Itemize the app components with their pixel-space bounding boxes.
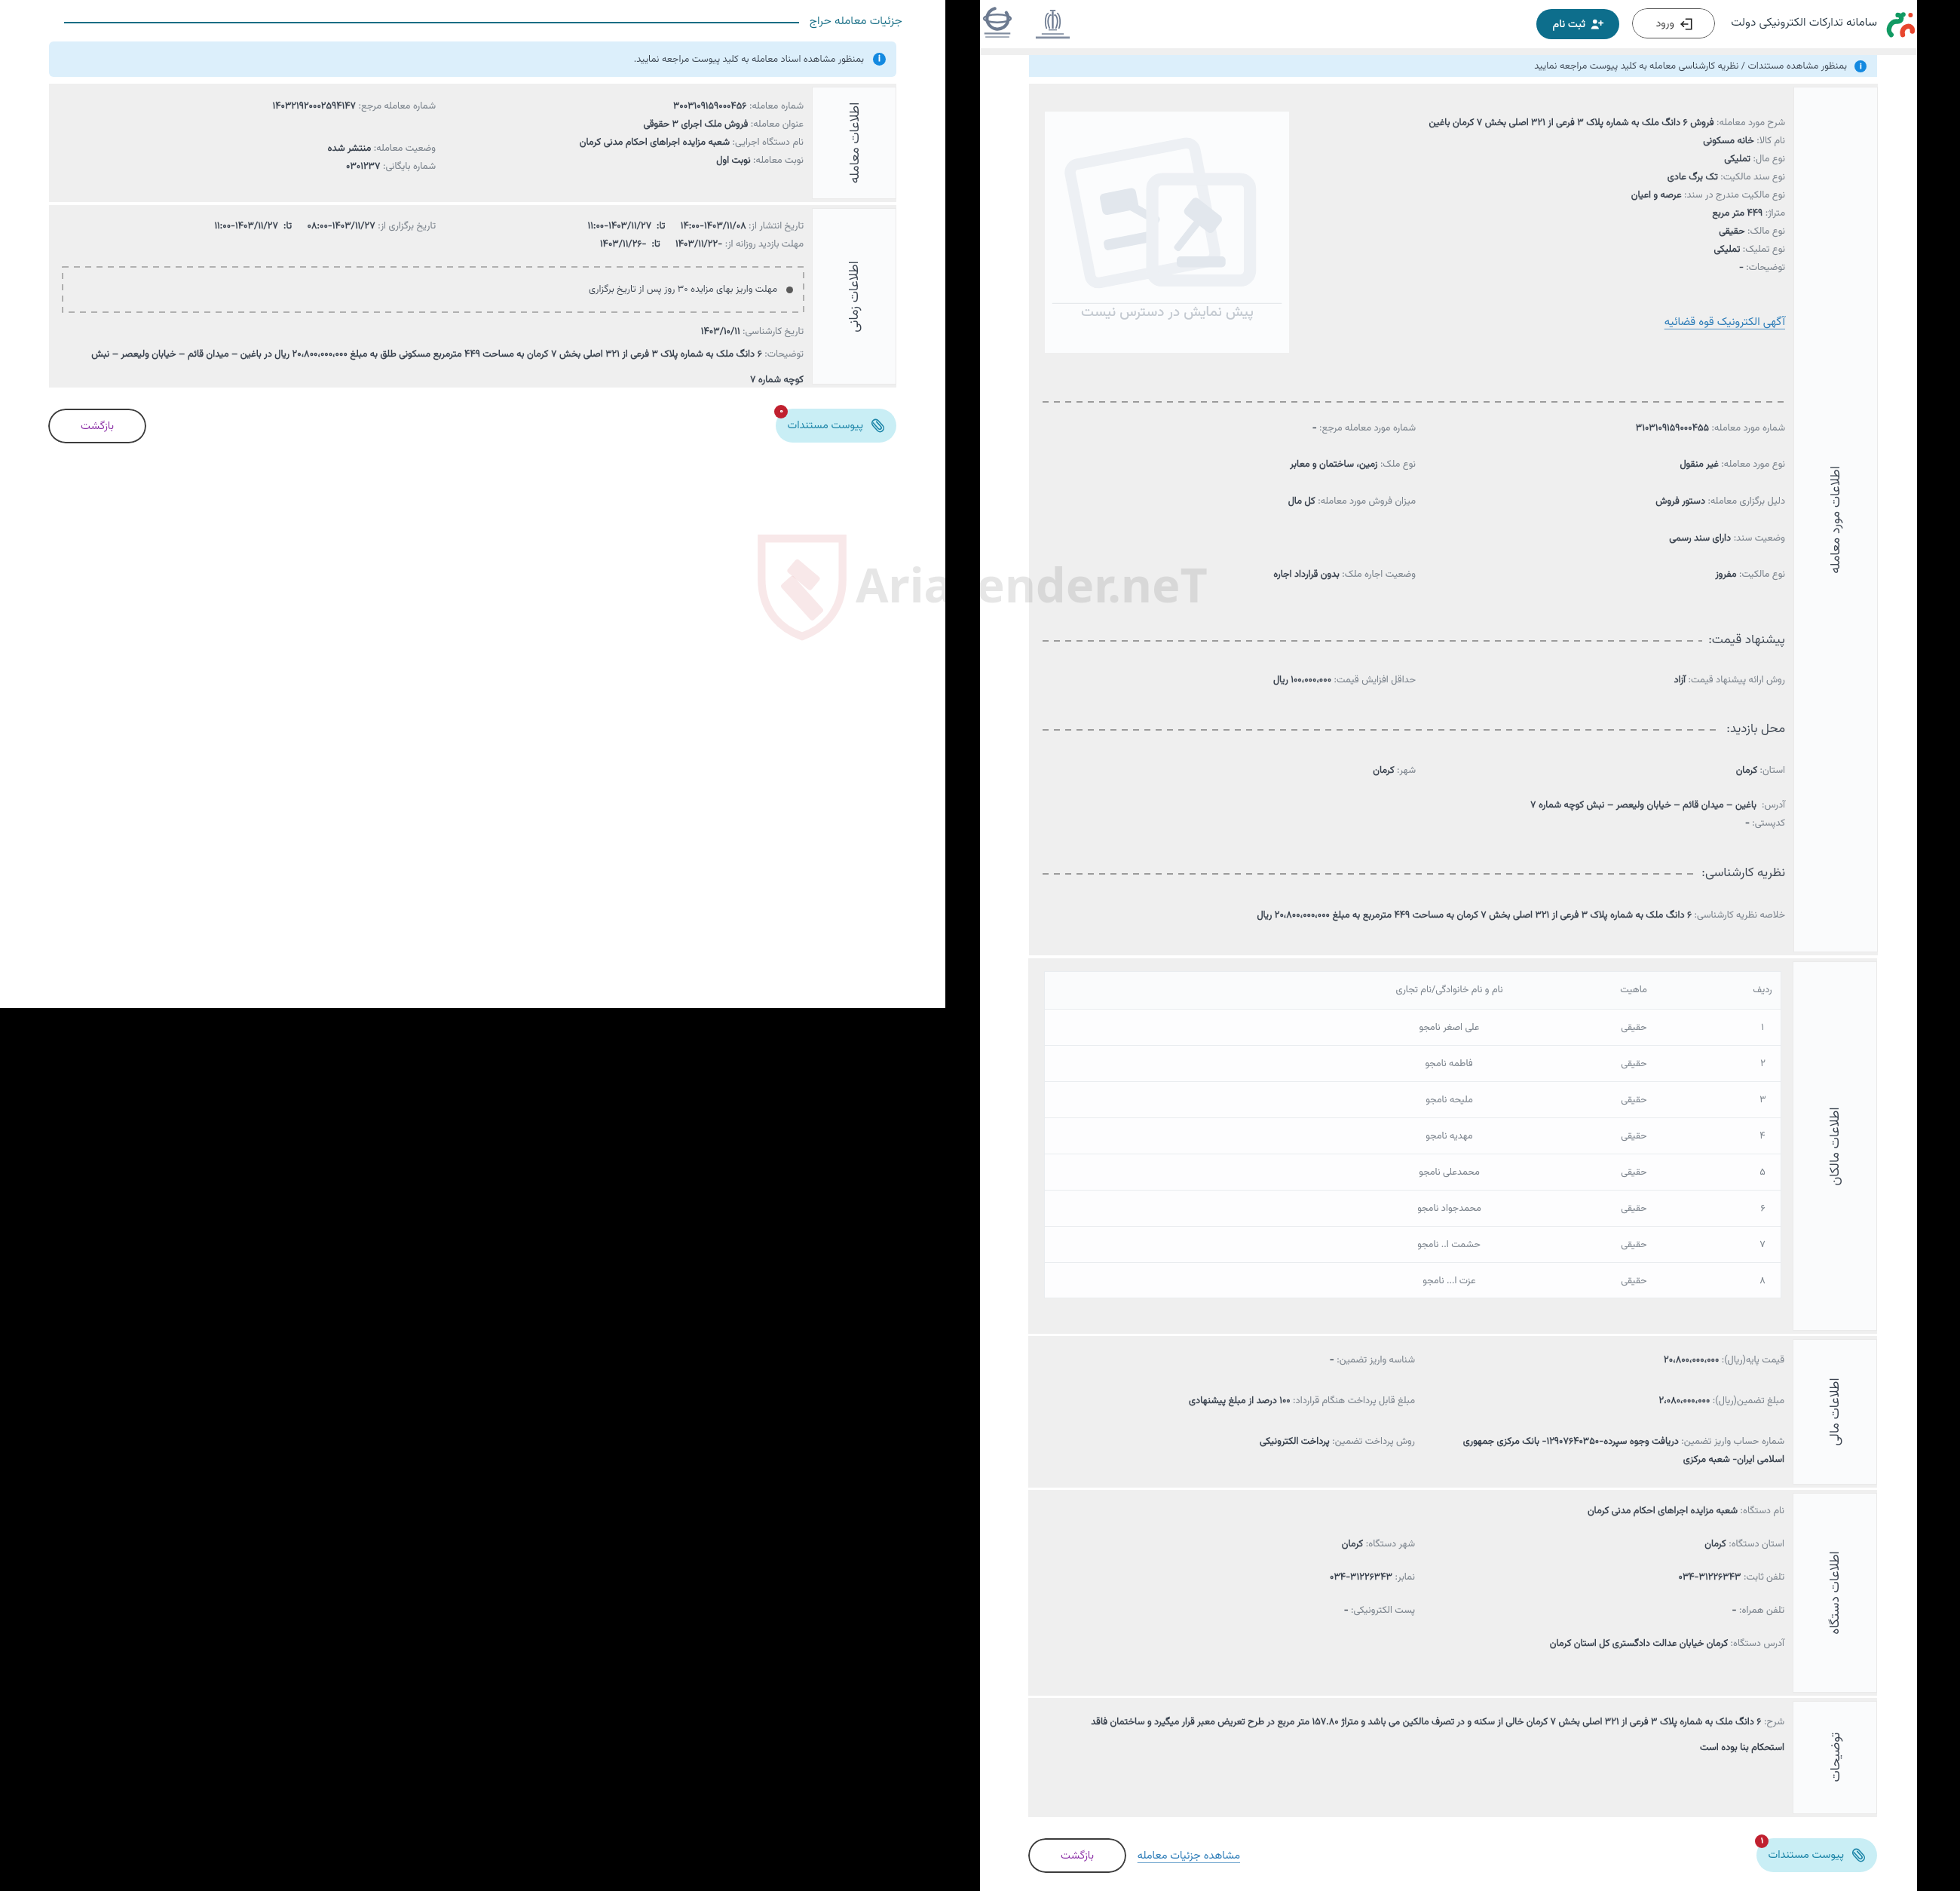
button[interactable]: ورود bbox=[1632, 8, 1715, 38]
staticText: بمنظور مشاهده مستندات / نظریه کارشناسی م… bbox=[1534, 59, 1847, 74]
staticText: وضعیت معامله: منتشر شده bbox=[49, 141, 436, 156]
staticText: پیوست مستندات bbox=[787, 417, 863, 434]
staticText: مهلت واریز بهای مزایده ۳۰ روز پس از تاری… bbox=[589, 282, 777, 297]
staticText: ۱ bbox=[1761, 1020, 1764, 1035]
staticText: حقیقی bbox=[1621, 1237, 1647, 1252]
staticText: میزان فروش مورد معامله: کل مال bbox=[1029, 494, 1416, 509]
staticText: محمدجواد نامجو bbox=[1417, 1201, 1481, 1216]
staticText: i bbox=[1860, 61, 1862, 72]
staticText: پیشنهاد قیمت: bbox=[1708, 630, 1785, 651]
other: Setad logo bbox=[1885, 9, 1915, 36]
staticText: تاریخ کارشناسی: ۱۴۰۳/۱۰/۱۱ bbox=[49, 324, 804, 339]
button[interactable]: Electronic Commerce Development Center bbox=[984, 8, 1011, 39]
other: Logo bbox=[984, 8, 1011, 39]
staticText: تاریخ برگزاری از: ۱۴۰۳/۱۱/۲۷-۰۸:۰۰ تا: ۱… bbox=[49, 219, 436, 234]
staticText: وضعیت اجاره ملک: بدون قرارداد اجاره bbox=[1029, 567, 1416, 582]
staticText: پیش نمایش در دسترس نیست bbox=[1081, 302, 1254, 324]
staticText: حقیقی bbox=[1621, 1056, 1647, 1071]
staticText: ۱ bbox=[1761, 1835, 1763, 1847]
staticText: ملیحه نامجو bbox=[1426, 1093, 1473, 1108]
staticText: ردیف bbox=[1753, 982, 1772, 998]
button[interactable]: Ministry of Industry, Mine and Trade bbox=[1030, 8, 1076, 39]
staticText: جزئیات معامله حراج bbox=[809, 12, 902, 30]
staticText: شهر: کرمان bbox=[1029, 763, 1416, 778]
button[interactable]: پیوست مستندات bbox=[1756, 1838, 1877, 1872]
staticText: عزت ا... نامجو bbox=[1423, 1273, 1476, 1289]
button[interactable]: Setad home bbox=[1885, 9, 1915, 36]
staticText: ۶ bbox=[1760, 1201, 1766, 1216]
staticText: روش پرداخت تضمین: پرداخت الکترونیکی bbox=[1028, 1434, 1415, 1449]
other: Login bbox=[1680, 18, 1692, 30]
staticText: قیمت پایه(ریال): ۲۰،۸۰۰،۰۰۰،۰۰۰ bbox=[1447, 1353, 1784, 1368]
staticText: i bbox=[878, 54, 880, 66]
staticText: ثبت نام bbox=[1552, 16, 1585, 33]
staticText: ۷ bbox=[1759, 1237, 1766, 1252]
other: Attach documents bbox=[870, 418, 886, 434]
staticText: آدرس دستگاه: کرمان خیابان عدالت دادگستری… bbox=[1447, 1636, 1784, 1651]
staticText: حقیقی bbox=[1621, 1129, 1647, 1144]
other: Emblem bbox=[1030, 8, 1076, 39]
button[interactable]: بازگشت bbox=[48, 409, 146, 443]
staticText: نوع مورد معامله: غیر منقول bbox=[1447, 457, 1785, 472]
staticText: ورود bbox=[1655, 15, 1674, 32]
staticText: حقیقی bbox=[1621, 1165, 1647, 1180]
staticText: سامانه تدارکات الکترونیکی دولت bbox=[1726, 14, 1877, 32]
staticText: نظریه کارشناسی: bbox=[1701, 863, 1785, 884]
staticText: شماره معامله مرجع: ۱۴۰۳۲۱۹۲۰۰۰۲۵۹۴۱۴۷ bbox=[49, 99, 436, 114]
staticText: مشاهده جزئیات معامله bbox=[1137, 1847, 1240, 1865]
staticText: کدپستی: - bbox=[1447, 816, 1785, 831]
staticText: اطلاعات مالکان bbox=[1825, 1107, 1845, 1186]
staticText: نوع مالکیت مندرج در سند: عرصه و اعیان bbox=[1029, 188, 1785, 206]
staticText: اطلاعات مالی bbox=[1825, 1378, 1845, 1446]
staticText: اطلاعات زمانی bbox=[844, 261, 865, 333]
staticText: مبلغ تضمین(ریال): ۲،۰۸۰،۰۰۰،۰۰۰ bbox=[1447, 1393, 1784, 1408]
button[interactable]: آگهی الکترونیک قوه قضائیه bbox=[1664, 314, 1785, 331]
staticText: نام دستگاه اجرایی: شعبه مزایده اجراهای ا… bbox=[436, 135, 804, 150]
staticText: تلفن ثابت: ‪۰۳۴-۳۱۲۲۶۳۴۳‬ bbox=[1447, 1570, 1784, 1585]
staticText: حداقل افزایش قیمت: ۱۰۰،۰۰۰،۰۰۰ ریال bbox=[1029, 673, 1416, 688]
staticText: بازگشت bbox=[1061, 1847, 1094, 1865]
staticText: خلاصه نظریه کارشناسی: ۶ دانگ ملک به شمار… bbox=[1029, 908, 1785, 923]
staticText: بازگشت bbox=[81, 418, 114, 435]
staticText: تلفن همراه: - bbox=[1447, 1603, 1784, 1618]
staticText: آدرس: باغین – میدان قائم – خیابان ولیعصر… bbox=[1447, 798, 1785, 813]
staticText: حقیقی bbox=[1621, 1093, 1647, 1108]
staticText: اطلاعات مورد معامله bbox=[1826, 466, 1846, 574]
staticText: نوع سند مالکیت: تک برگ عادی bbox=[1029, 170, 1785, 188]
staticText: اطلاعات دستگاه bbox=[1825, 1551, 1845, 1635]
staticText: استان: کرمان bbox=[1447, 763, 1785, 778]
staticText: نمابر: ‪۰۳۴-۳۱۲۲۶۳۴۳‬ bbox=[1028, 1570, 1415, 1585]
staticText: ۵ bbox=[1759, 1165, 1766, 1180]
button[interactable]: ثبت نام bbox=[1536, 9, 1619, 39]
staticText: ۰ bbox=[779, 406, 783, 418]
staticText: نام کالا: خانه مسکونی bbox=[1029, 133, 1785, 152]
staticText: شهر دستگاه: کرمان bbox=[1028, 1537, 1415, 1552]
button[interactable]: مشاهده جزئیات معامله bbox=[1137, 1838, 1240, 1873]
staticText: محمدعلی نامجو bbox=[1419, 1165, 1480, 1180]
staticText: دلیل برگزاری معامله: دستور فروش bbox=[1447, 494, 1785, 509]
button[interactable]: بازگشت bbox=[1028, 1838, 1126, 1873]
staticText: توضیحات: - bbox=[1029, 260, 1785, 278]
staticText: شناسه واریز تضمین: - bbox=[1028, 1353, 1415, 1368]
staticText: ماهیت bbox=[1620, 982, 1647, 998]
button[interactable]: پیوست مستندات bbox=[776, 409, 896, 443]
staticText: شرح مورد معامله: فروش ۶ دانگ ملک به شمار… bbox=[1029, 115, 1785, 133]
staticText: تاریخ انتشار از: ۱۴۰۳/۱۱/۰۸-۱۴:۰۰ تا: ۱۴… bbox=[436, 219, 804, 234]
staticText: حقیقی bbox=[1621, 1273, 1647, 1289]
staticText: شماره حساب واریز تضمین: دریافت وجوه سپرد… bbox=[1447, 1434, 1784, 1467]
staticText: توضیحات bbox=[1825, 1732, 1846, 1782]
staticText: شماره بایگانی: ۰۳۰۱۲۳۷ bbox=[49, 159, 436, 174]
staticText: ۴ bbox=[1759, 1129, 1766, 1144]
staticText: مهلت بازدید روزانه از: -۱۴۰۳/۱۱/۲۲ تا: -… bbox=[436, 237, 804, 252]
staticText: ۸ bbox=[1759, 1273, 1766, 1289]
staticText: AriaTender.neT bbox=[856, 552, 945, 617]
staticText: حشمت ا.. نامجو bbox=[1417, 1237, 1481, 1252]
other: Attach documents bbox=[1851, 1847, 1867, 1863]
staticText: مبلغ قابل پرداخت هنگام قرارداد: ۱۰۰ درصد… bbox=[1028, 1393, 1415, 1408]
staticText: نوبت معامله: نوبت اول bbox=[436, 153, 804, 168]
staticText: اطلاعات معامله bbox=[845, 102, 865, 184]
staticText: نوع تملیک: تملیکی bbox=[1029, 242, 1785, 260]
other: Information bbox=[1854, 60, 1867, 72]
staticText: عنوان معامله: فروش ملک اجرای ۳ حقوقی bbox=[436, 117, 804, 132]
staticText: توضیحات: ۶ دانگ ملک به شماره پلاک ۳ فرعی… bbox=[90, 347, 804, 388]
